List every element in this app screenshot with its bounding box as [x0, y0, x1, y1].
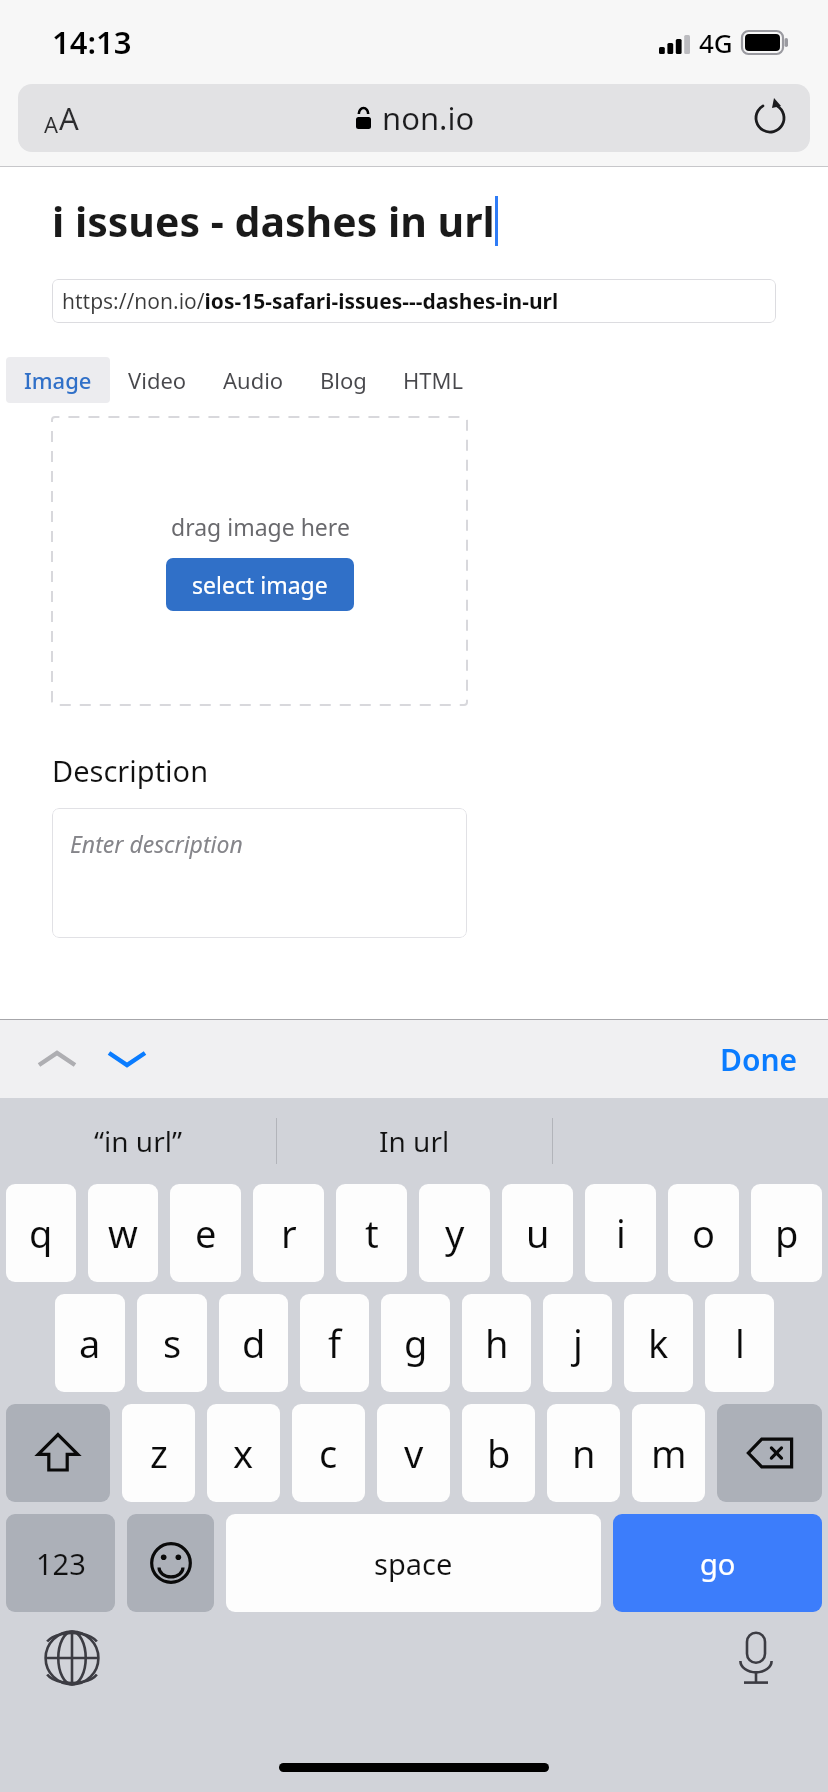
staticText: c [319, 1427, 338, 1479]
button[interactable]: e [170, 1184, 241, 1282]
staticText: “in url” [94, 1122, 183, 1160]
button[interactable]: w [88, 1184, 158, 1282]
staticText: l [735, 1317, 745, 1369]
staticText: Video [128, 365, 187, 395]
button[interactable]: s [137, 1294, 207, 1392]
button[interactable]: l [705, 1294, 774, 1392]
staticText: r [281, 1207, 297, 1259]
staticText: 123 [36, 1544, 86, 1583]
staticText: k [648, 1317, 669, 1369]
staticText: h [485, 1317, 509, 1369]
staticText: space [374, 1544, 453, 1583]
button[interactable]: drag image here [52, 417, 467, 705]
button[interactable]: https://non.io/ios-15-safari-issues---da… [52, 279, 776, 323]
button[interactable]: j [543, 1294, 612, 1392]
button[interactable]: Done [690, 1025, 828, 1094]
staticText: a [79, 1317, 101, 1369]
staticText: go [700, 1544, 736, 1583]
button[interactable]: Previous field [28, 1030, 86, 1088]
staticText: drag image here [171, 511, 350, 542]
button[interactable]: y [419, 1184, 490, 1282]
button[interactable]: select image [166, 558, 354, 611]
staticText: x [233, 1427, 254, 1479]
staticText: e [195, 1207, 217, 1259]
staticText: A [59, 97, 79, 139]
staticText: f [328, 1317, 342, 1369]
button[interactable]: q [6, 1184, 76, 1282]
button[interactable]: go [613, 1514, 822, 1612]
button[interactable]: Text size [18, 84, 810, 152]
button[interactable]: f [300, 1294, 369, 1392]
button[interactable]: Reload [744, 92, 796, 144]
staticText: Description [52, 751, 209, 790]
staticText: https://non.io/ios-15-safari-issues---da… [62, 287, 559, 316]
button[interactable]: Video [110, 357, 205, 403]
staticText: t [365, 1207, 379, 1259]
button[interactable]: Backspace [717, 1404, 822, 1502]
button[interactable]: b [462, 1404, 535, 1502]
staticText: select image [192, 569, 328, 600]
button[interactable]: v [377, 1404, 450, 1502]
button[interactable]: Change keyboard [42, 1628, 102, 1688]
button[interactable]: p [751, 1184, 822, 1282]
staticText: A [44, 109, 59, 139]
button[interactable]: Audio [205, 357, 302, 403]
staticText: i [616, 1207, 626, 1259]
staticText: Image [24, 365, 92, 395]
staticText: s [163, 1317, 182, 1369]
staticText: y [445, 1207, 465, 1259]
staticText: o [692, 1207, 715, 1259]
staticText: z [150, 1427, 168, 1479]
staticText: v [404, 1427, 424, 1479]
staticText: 14:13 [52, 21, 132, 63]
button[interactable]: “in url” [0, 1098, 276, 1184]
staticText: d [242, 1317, 266, 1369]
staticText: j [573, 1317, 583, 1369]
button[interactable]: Next field [98, 1030, 156, 1088]
staticText: Audio [223, 365, 284, 395]
staticText: 4G [699, 25, 733, 60]
button[interactable]: o [668, 1184, 739, 1282]
button[interactable]: x [207, 1404, 280, 1502]
staticText: q [29, 1207, 53, 1259]
button[interactable]: k [624, 1294, 693, 1392]
button[interactable]: Enter description [52, 808, 467, 938]
button[interactable]: i [585, 1184, 656, 1282]
button[interactable]: Dictation [726, 1628, 786, 1688]
button[interactable]: c [292, 1404, 365, 1502]
button[interactable]: n [547, 1404, 620, 1502]
button[interactable]: Blog [302, 357, 385, 403]
staticText: u [526, 1207, 550, 1259]
button[interactable]: t [336, 1184, 407, 1282]
staticText: HTML [403, 365, 464, 395]
staticText: Done [720, 1039, 798, 1080]
button[interactable]: Emoji [127, 1514, 214, 1612]
staticText: non.io [382, 97, 475, 139]
button[interactable]: HTML [385, 357, 482, 403]
button[interactable]: u [502, 1184, 573, 1282]
staticText: g [404, 1317, 428, 1369]
button[interactable]: Text size [38, 91, 85, 145]
button[interactable]: Image [6, 357, 110, 403]
button[interactable]: space [226, 1514, 601, 1612]
button[interactable]: In url [277, 1098, 552, 1184]
staticText: b [487, 1427, 511, 1479]
button[interactable]: g [381, 1294, 450, 1392]
staticText: In url [379, 1122, 450, 1160]
button[interactable]: h [462, 1294, 531, 1392]
staticText: Enter description [70, 828, 243, 859]
staticText: n [572, 1427, 596, 1479]
staticText: w [108, 1207, 138, 1259]
button[interactable]: d [219, 1294, 288, 1392]
staticText: Blog [320, 365, 367, 395]
staticText: m [651, 1427, 687, 1479]
button[interactable]: Shift [6, 1404, 110, 1502]
button[interactable]: z [122, 1404, 195, 1502]
button[interactable]: 123 [6, 1514, 115, 1612]
button[interactable]: m [632, 1404, 705, 1502]
button[interactable]: a [55, 1294, 125, 1392]
staticText: p [775, 1207, 799, 1259]
staticText: i issues - dashes in url [52, 193, 495, 249]
button[interactable]: r [253, 1184, 324, 1282]
